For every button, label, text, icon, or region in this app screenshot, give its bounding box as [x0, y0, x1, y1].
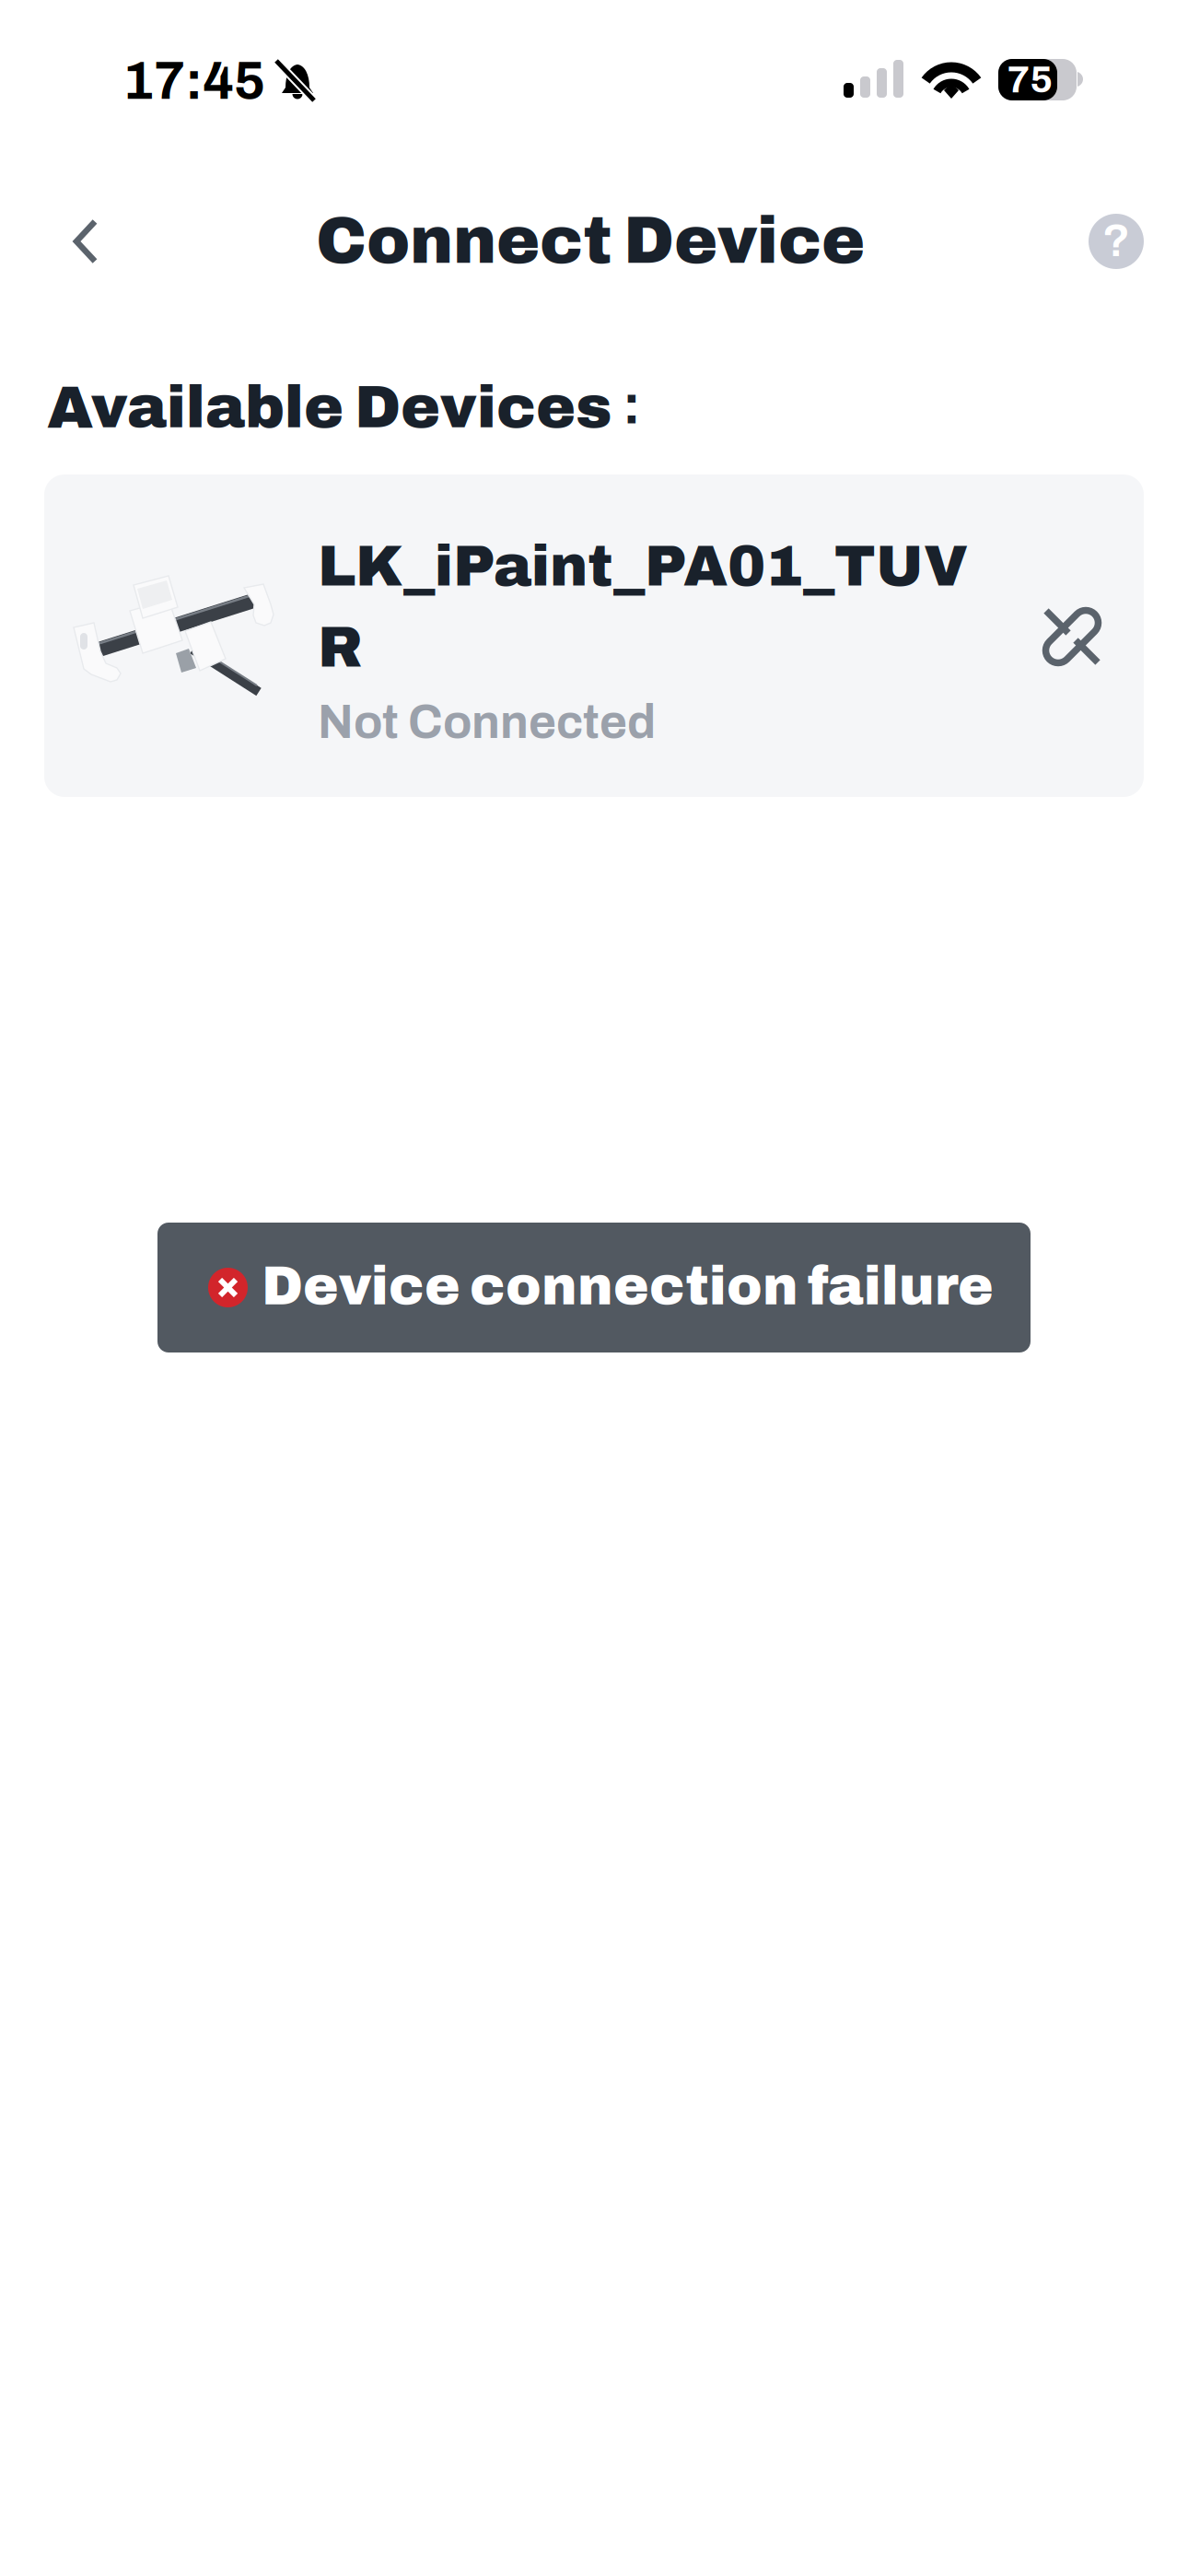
- staticText: :: [623, 376, 641, 435]
- button[interactable]: LK_iPaint_PA01_TUV: [44, 474, 1144, 797]
- staticText: LK_iPaint_PA01_TUV: [318, 535, 968, 597]
- staticText: Not Connected: [318, 697, 656, 748]
- staticText: Available Devices: [47, 375, 612, 440]
- staticText: 75: [1007, 59, 1053, 100]
- button[interactable]: Help: [1072, 197, 1160, 286]
- staticText: R: [318, 616, 362, 679]
- button[interactable]: Back: [41, 197, 130, 286]
- staticText: Device connection failure: [262, 1258, 994, 1316]
- staticText: ?: [1102, 215, 1130, 266]
- staticText: Connect Device: [316, 205, 865, 277]
- staticText: 17:45: [122, 53, 265, 110]
